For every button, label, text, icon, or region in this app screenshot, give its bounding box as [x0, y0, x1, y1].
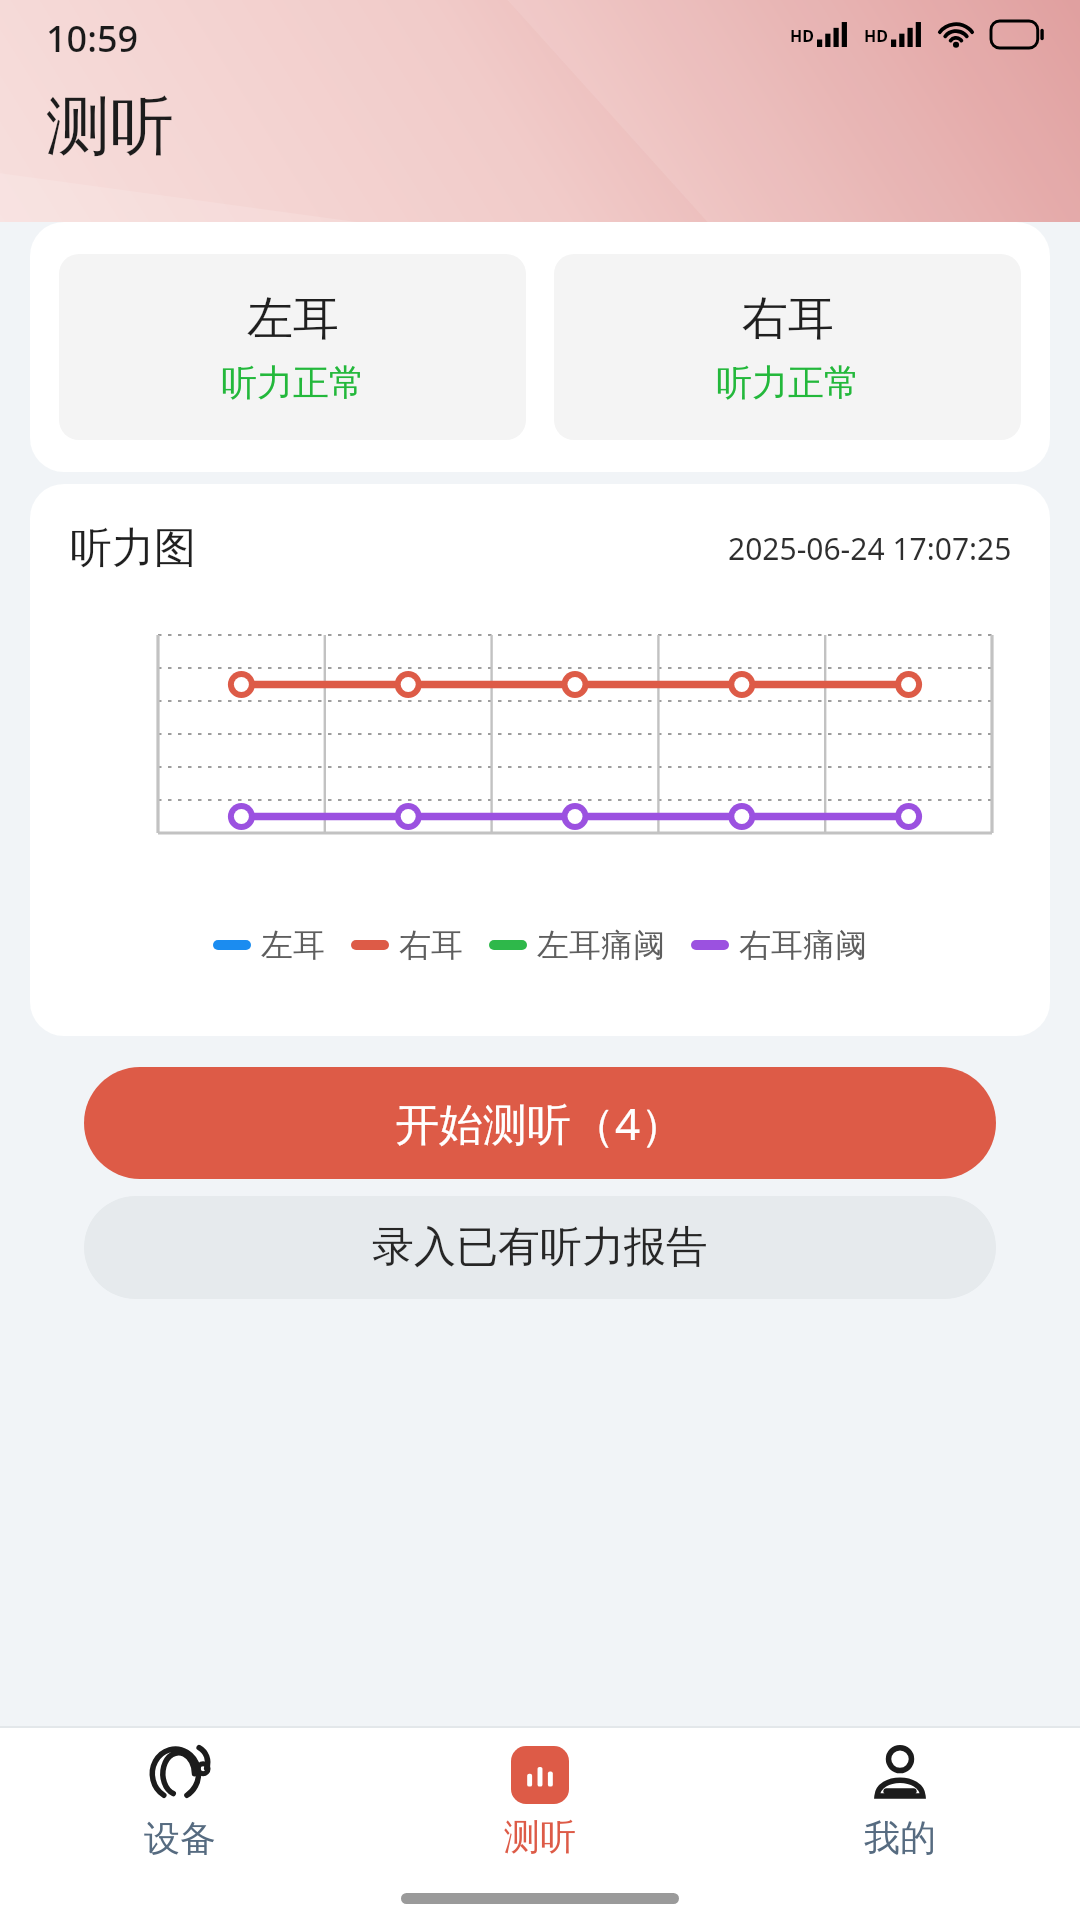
other: 设备	[147, 1744, 213, 1806]
staticText: 开始测听（4）	[395, 1093, 685, 1153]
staticText: 设备	[144, 1816, 216, 1861]
button[interactable]: 开始测听（4）	[84, 1067, 996, 1179]
staticText: 听力图	[70, 522, 196, 575]
staticText: HD	[864, 25, 888, 47]
button[interactable]: 设备	[0, 1728, 360, 1876]
staticText: 听力正常	[221, 360, 365, 405]
staticText: 录入已有听力报告	[372, 1221, 708, 1274]
staticText: 左耳	[261, 925, 325, 965]
staticText: 右耳	[399, 925, 463, 965]
staticText: 听力正常	[716, 360, 860, 405]
button[interactable]: 录入已有听力报告	[84, 1196, 996, 1299]
button[interactable]: 我的	[720, 1728, 1080, 1876]
button[interactable]: 右耳	[554, 254, 1021, 440]
staticText: 左耳痛阈	[537, 925, 665, 965]
other: 测听	[511, 1746, 569, 1804]
staticText: 左耳	[247, 290, 339, 348]
staticText: 2025-06-24 17:07:25	[728, 528, 1012, 569]
staticText: 测听	[504, 1814, 576, 1859]
button[interactable]: 左耳	[59, 254, 526, 440]
staticText: 10:59	[46, 14, 139, 63]
staticText: 我的	[864, 1815, 936, 1860]
other: 我的	[869, 1745, 931, 1805]
button[interactable]: 测听	[360, 1728, 720, 1876]
staticText: 测听	[46, 86, 174, 167]
staticText: 右耳	[742, 290, 834, 348]
staticText: 右耳痛阈	[739, 925, 867, 965]
staticText: HD	[790, 25, 814, 47]
